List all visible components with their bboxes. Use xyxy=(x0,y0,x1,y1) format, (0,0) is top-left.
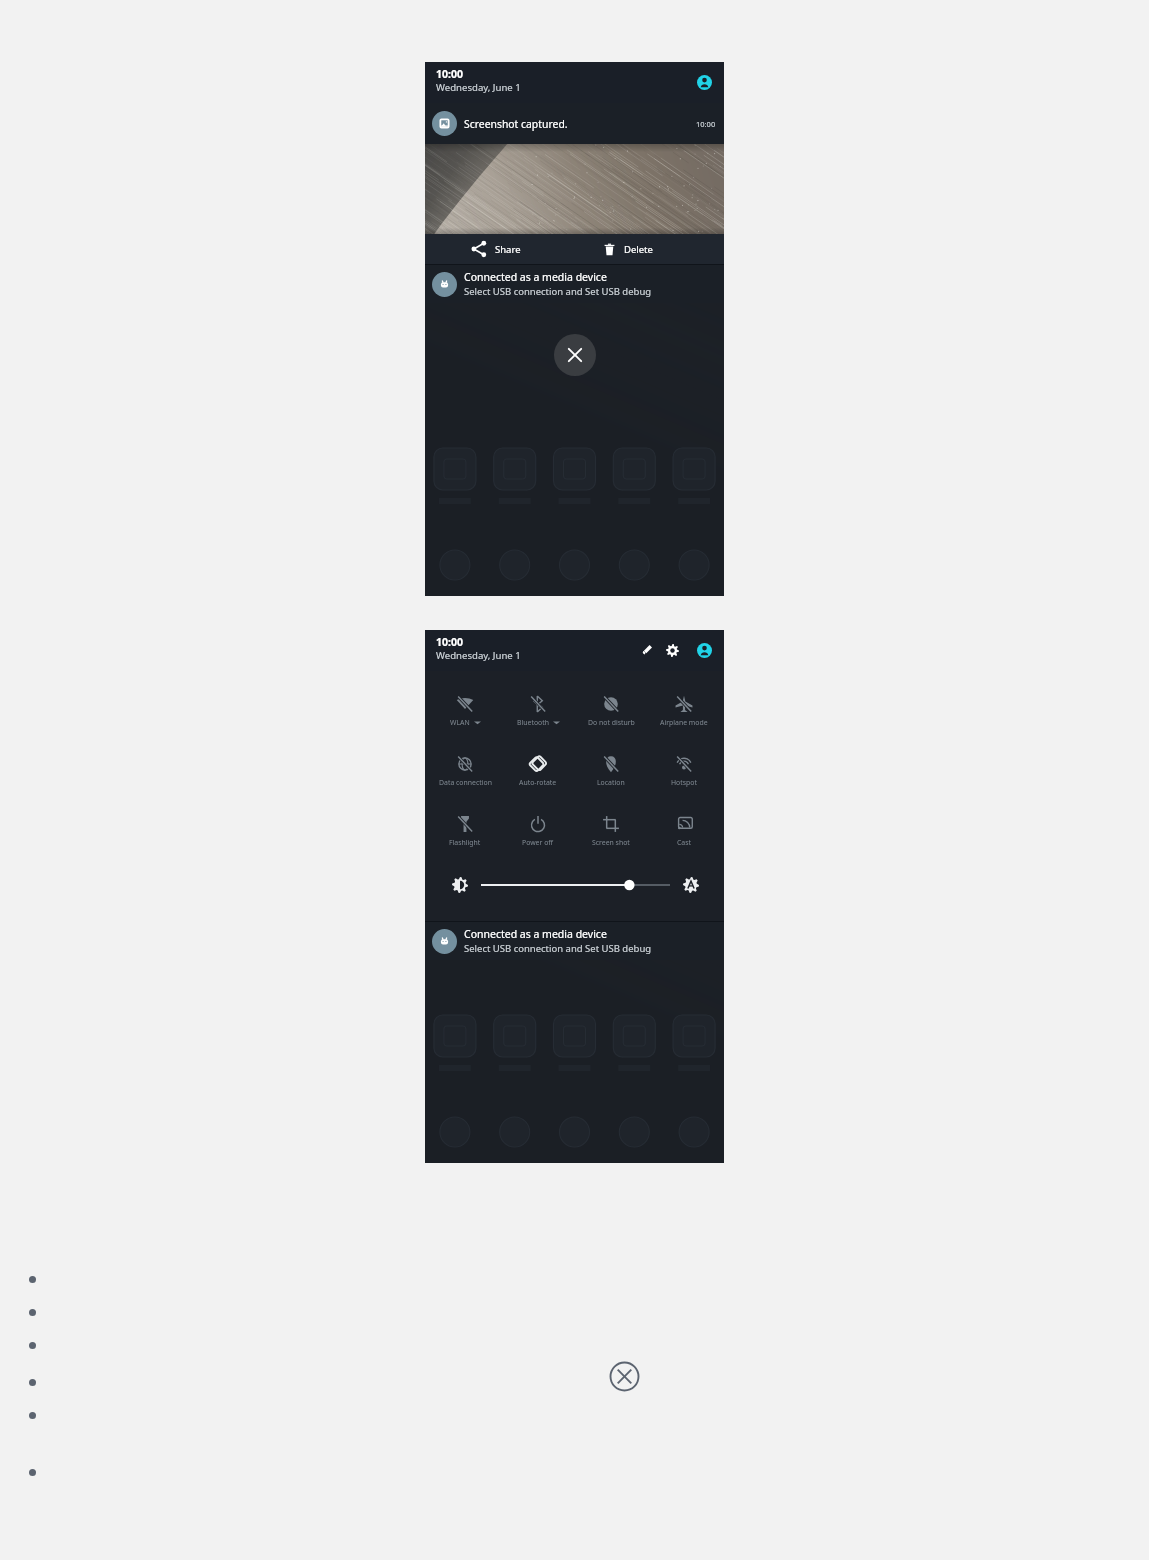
button[interactable]: Hotspot xyxy=(648,755,720,787)
staticText: Wednesday, June 1 xyxy=(436,81,521,94)
button[interactable]: Screen shot xyxy=(575,815,647,847)
staticText: Select USB connection and Set USB debug xyxy=(464,942,652,955)
staticText: Screenshot captured. xyxy=(464,117,568,131)
staticText: 10:00 xyxy=(696,119,716,129)
button[interactable]: Bluetooth xyxy=(502,695,574,727)
staticText: Share xyxy=(495,243,521,256)
staticText: Screen shot xyxy=(592,838,630,847)
staticText: Auto-rotate xyxy=(519,778,557,787)
staticText: Delete xyxy=(624,243,653,256)
staticText: Wednesday, June 1 xyxy=(436,649,521,662)
button[interactable]: Edit xyxy=(634,638,658,662)
staticText: Connected as a media device xyxy=(464,927,607,941)
button[interactable]: Settings xyxy=(660,638,684,662)
button[interactable]: Airplane mode xyxy=(648,695,720,727)
button[interactable]: WLAN xyxy=(429,695,501,727)
button[interactable]: Share xyxy=(471,234,521,264)
staticText: Airplane mode xyxy=(660,718,708,727)
button[interactable]: Cast xyxy=(648,815,720,847)
staticText: 10:00 xyxy=(436,635,463,649)
button[interactable]: Close xyxy=(609,1361,640,1392)
staticText: Power off xyxy=(522,838,554,847)
staticText: Connected as a media device xyxy=(464,270,607,284)
staticText: Bluetooth xyxy=(517,718,549,727)
staticText: Cast xyxy=(677,838,692,847)
staticText: Flashlight xyxy=(449,838,481,847)
button[interactable]: Delete xyxy=(603,234,653,264)
button[interactable]: Power off xyxy=(502,815,574,847)
button[interactable]: Location xyxy=(575,755,647,787)
button[interactable]: Connected as a media device xyxy=(425,265,724,303)
button[interactable]: Dismiss all notifications xyxy=(554,334,596,376)
staticText: 10:00 xyxy=(436,67,463,81)
button[interactable]: User xyxy=(692,638,716,662)
button[interactable]: Do not disturb xyxy=(575,695,647,727)
staticText: Location xyxy=(597,778,625,787)
button[interactable]: Screenshot captured. xyxy=(425,103,724,144)
staticText: WLAN xyxy=(450,718,470,727)
button[interactable]: User xyxy=(692,70,716,94)
staticText: Select USB connection and Set USB debug xyxy=(464,285,652,298)
staticText: Data connection xyxy=(439,778,492,787)
button[interactable]: Auto-rotate xyxy=(502,755,574,787)
staticText: Hotspot xyxy=(671,778,697,787)
staticText: Do not disturb xyxy=(588,718,635,727)
button[interactable]: Flashlight xyxy=(429,815,501,847)
button[interactable]: Data connection xyxy=(429,755,501,787)
button[interactable]: Connected as a media device xyxy=(425,922,724,960)
